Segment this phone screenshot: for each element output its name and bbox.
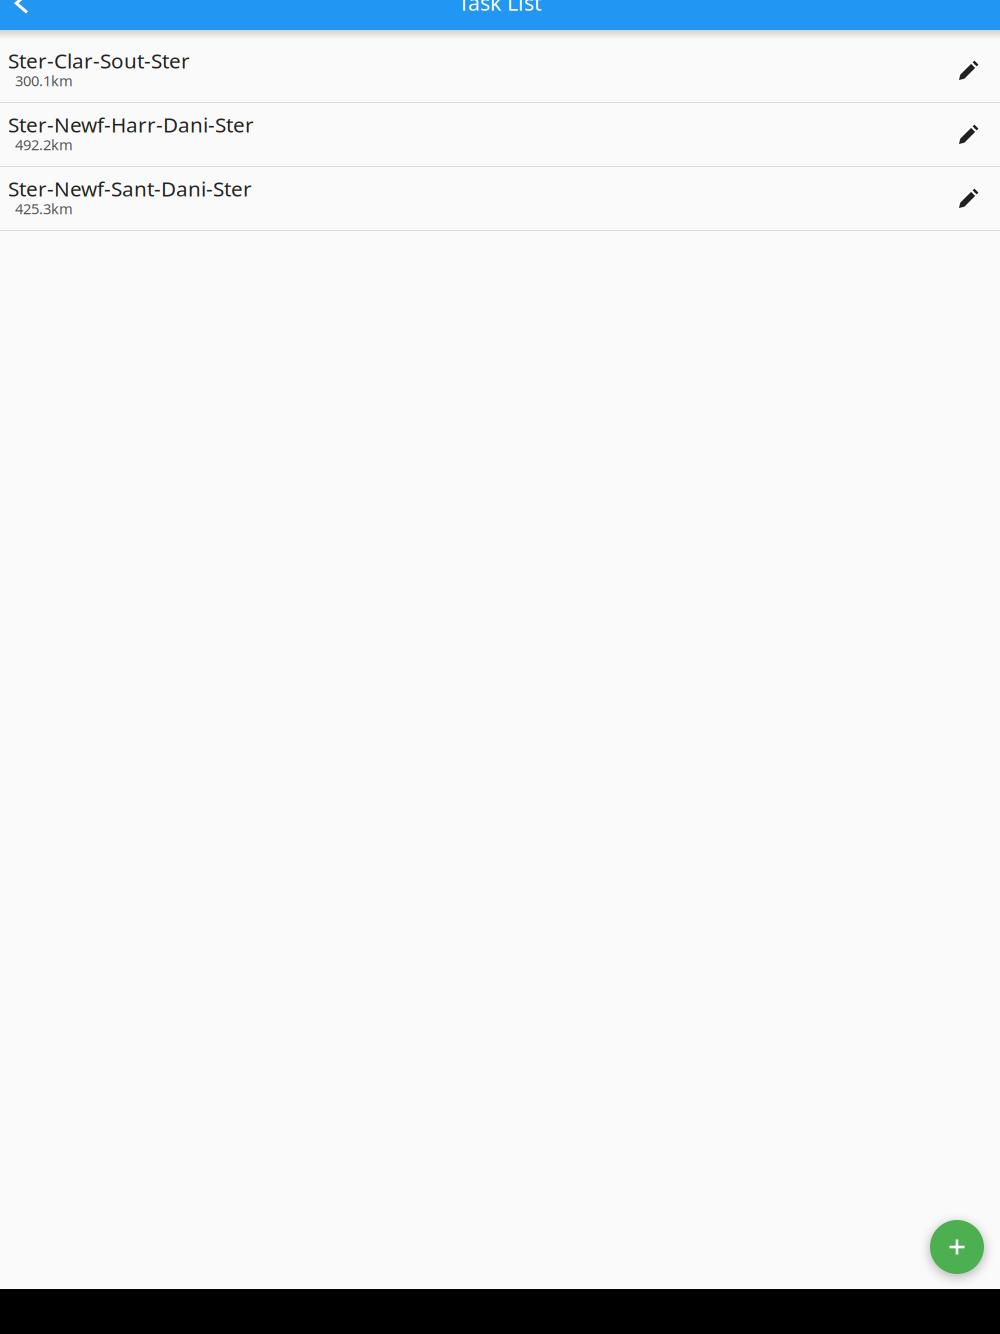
staticText: Task List [458,0,542,17]
button[interactable]: Ster-Newf-Sant-Dani-Ster [0,167,1000,230]
button[interactable]: Back [0,0,52,30]
staticText: Ster-Newf-Sant-Dani-Ster [8,174,252,202]
button[interactable]: Ster-Newf-Harr-Dani-Ster [0,103,1000,166]
staticText: 492.2km [15,135,73,155]
staticText: Ster-Newf-Harr-Dani-Ster [8,110,254,138]
staticText: 300.1km [15,71,73,91]
button[interactable]: Ster-Clar-Sout-Ster [0,39,1000,102]
button[interactable]: Add task [930,1220,984,1274]
staticText: Ster-Clar-Sout-Ster [8,46,190,74]
staticText: 425.3km [15,199,73,219]
